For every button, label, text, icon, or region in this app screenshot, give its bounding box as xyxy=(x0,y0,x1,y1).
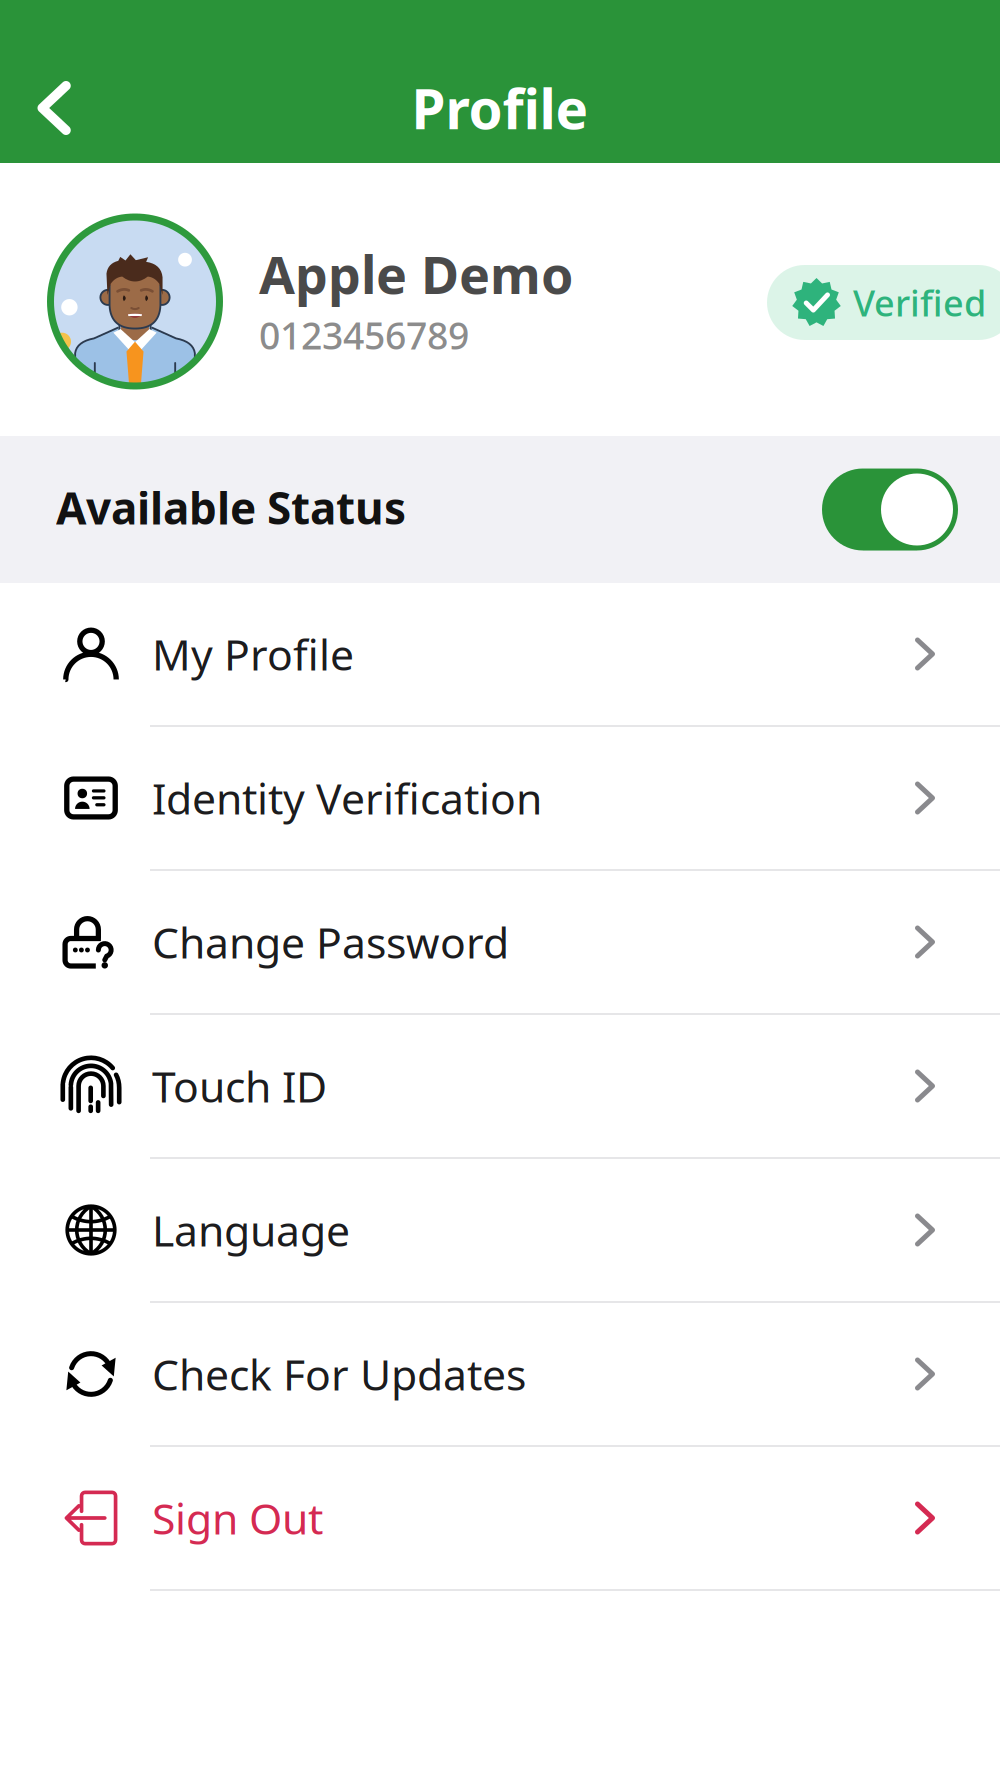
button[interactable]: Touch ID xyxy=(0,1015,1000,1159)
button[interactable]: Change Password xyxy=(0,871,1000,1015)
staticText: Identity Verification xyxy=(152,770,542,826)
staticText: Change Password xyxy=(152,914,509,970)
staticText: Profile xyxy=(411,72,588,144)
staticText: Available Status xyxy=(56,478,406,537)
button[interactable]: My Profile xyxy=(0,583,1000,727)
button[interactable]: Language xyxy=(0,1159,1000,1303)
staticText: Apple Demo xyxy=(259,239,574,308)
staticText: Verified xyxy=(853,279,986,326)
button[interactable]: Back xyxy=(4,58,104,158)
staticText: Language xyxy=(152,1202,350,1258)
staticText: My Profile xyxy=(152,626,354,682)
button[interactable]: Check For Updates xyxy=(0,1303,1000,1447)
staticText: Check For Updates xyxy=(152,1346,526,1402)
staticText: Touch ID xyxy=(152,1058,327,1114)
staticText: 0123456789 xyxy=(259,310,469,360)
button[interactable]: Identity Verification xyxy=(0,727,1000,871)
staticText: Sign Out xyxy=(152,1490,323,1546)
button[interactable]: Sign Out xyxy=(0,1447,1000,1591)
button[interactable]: Available Status xyxy=(822,468,958,550)
